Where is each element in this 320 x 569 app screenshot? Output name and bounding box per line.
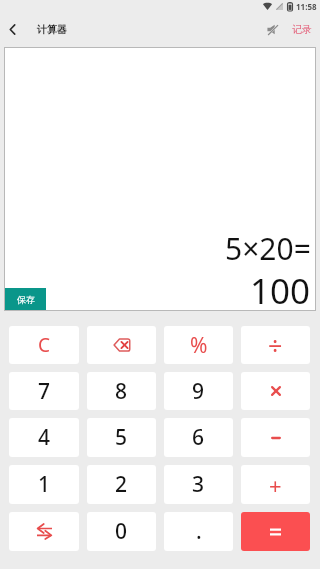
button[interactable]: Swap [9, 512, 79, 551]
staticText: 8 [115, 377, 128, 406]
button[interactable]: + [241, 465, 310, 504]
staticText: 4 [38, 423, 51, 452]
button[interactable]: 4 [9, 418, 79, 457]
staticText: % [190, 331, 208, 360]
button[interactable]: . [164, 512, 233, 551]
staticText: . [196, 517, 202, 546]
button[interactable]: C [9, 326, 79, 364]
staticText: 3 [192, 470, 205, 499]
staticText: 9 [192, 377, 205, 406]
button[interactable]: 9 [164, 372, 233, 410]
button[interactable] [241, 418, 310, 457]
button[interactable]: Backspace [87, 326, 156, 364]
button[interactable]: 记录 [288, 16, 315, 42]
button[interactable]: 6 [164, 418, 233, 457]
staticText: ÷ [268, 328, 283, 362]
staticText: 100 [250, 267, 311, 315]
staticText: 1 [38, 470, 51, 499]
button[interactable]: 保存 [5, 288, 46, 310]
staticText: 6 [192, 423, 205, 452]
button[interactable]: 5 [87, 418, 156, 457]
staticText: 5 [115, 423, 128, 452]
staticText: 保存 [17, 294, 35, 305]
staticText: 11:58 [296, 1, 317, 12]
staticText: 2 [115, 470, 128, 499]
button[interactable]: % [164, 326, 233, 364]
button[interactable]: 3 [164, 465, 233, 504]
staticText: + [269, 470, 282, 500]
button[interactable]: 8 [87, 372, 156, 410]
button[interactable]: 0 [87, 512, 156, 551]
staticText: 5×20= [225, 228, 311, 269]
button[interactable]: ÷ [241, 326, 310, 364]
button[interactable]: 7 [9, 372, 79, 410]
button[interactable]: 1 [9, 465, 79, 504]
button[interactable] [241, 372, 310, 410]
button[interactable] [241, 512, 310, 551]
staticText: C [38, 332, 51, 358]
staticText: 计算器 [37, 23, 67, 36]
staticText: 0 [115, 517, 128, 546]
staticText: 7 [38, 377, 51, 406]
button[interactable]: Mute [258, 16, 286, 42]
button[interactable]: Back [0, 16, 25, 42]
staticText: 记录 [292, 23, 312, 36]
button[interactable]: 2 [87, 465, 156, 504]
